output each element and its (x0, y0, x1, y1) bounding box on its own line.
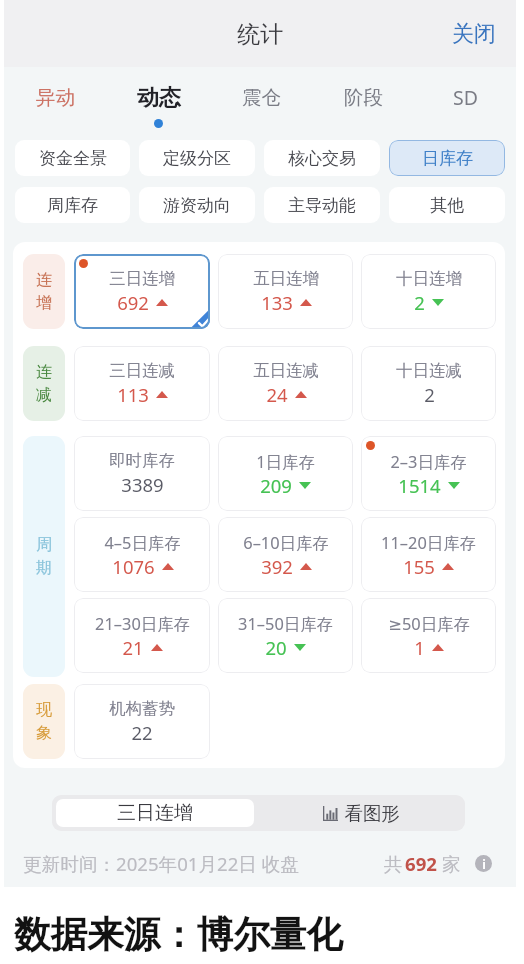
staticText: 209 (260, 473, 292, 498)
button[interactable]: 异动 (4, 67, 107, 140)
button[interactable]: 十日连增 (361, 254, 496, 329)
staticText: 五日连减 (253, 360, 319, 381)
staticText: 关闭 (452, 20, 496, 48)
staticText: 20 (265, 635, 287, 660)
staticText: 五日连增 (253, 268, 319, 289)
staticText: 共 (381, 851, 405, 876)
staticText: 统计 (237, 20, 283, 49)
button[interactable]: 核心交易 (264, 140, 380, 176)
staticText: 资金全景 (39, 148, 107, 169)
button[interactable]: 机构蓄势 (74, 684, 210, 759)
staticText: 震仓 (242, 85, 281, 110)
staticText: 6–10日库存 (243, 531, 329, 553)
staticText: SD (453, 84, 478, 111)
staticText: 2 (424, 382, 435, 407)
staticText: 连 减 (36, 362, 52, 405)
staticText: 133 (261, 290, 293, 315)
button[interactable]: 阶段 (312, 67, 414, 140)
staticText: 定级分区 (163, 148, 231, 169)
button[interactable]: 定级分区 (139, 140, 255, 176)
button[interactable]: 6–10日库存 (218, 517, 353, 592)
button[interactable]: 连 增 (23, 254, 65, 329)
button[interactable]: 现 象 (23, 684, 65, 759)
staticText: 现 象 (36, 700, 52, 743)
staticText: 动态 (137, 84, 181, 112)
staticText: 核心交易 (288, 148, 356, 169)
button[interactable]: 关闭 (452, 20, 496, 48)
button[interactable]: 4–5日库存 (74, 517, 210, 592)
staticText: 155 (403, 554, 435, 579)
staticText: 3389 (121, 472, 164, 497)
button[interactable]: 主导动能 (264, 187, 380, 223)
staticText: 692 (405, 851, 437, 876)
staticText: 4–5日库存 (104, 531, 181, 553)
staticText: 看图形 (344, 802, 400, 825)
button[interactable]: 2–3日库存 (361, 436, 496, 511)
staticText: 机构蓄势 (109, 698, 175, 719)
staticText: 数据来源：博尔量化 (14, 912, 343, 958)
button[interactable]: 周 期 (23, 436, 65, 677)
button[interactable]: 即时库存 (74, 436, 210, 511)
staticText: 1 (414, 635, 425, 660)
button[interactable]: 十日连减 (361, 346, 496, 421)
button[interactable]: 游资动向 (139, 187, 255, 223)
staticText: 三日连增 (109, 268, 175, 289)
staticText: 1076 (112, 554, 155, 579)
staticText: 家 (437, 851, 461, 876)
staticText: 其他 (430, 195, 464, 216)
staticText: 692 (117, 290, 149, 315)
button[interactable]: 日库存 (389, 140, 505, 176)
staticText: 连 增 (36, 270, 52, 313)
button[interactable]: 动态 (107, 67, 210, 140)
button[interactable]: 1日库存 (218, 436, 353, 511)
staticText: 1日库存 (256, 450, 315, 472)
staticText: 22 (131, 720, 153, 745)
button[interactable]: 11–20日库存 (361, 517, 496, 592)
button[interactable]: 看图形 (258, 795, 465, 831)
staticText: 周库存 (47, 195, 98, 216)
staticText: 11–20日库存 (381, 531, 476, 553)
staticText: 21 (122, 635, 144, 660)
staticText: 三日连增 (117, 801, 193, 825)
button[interactable]: ≥50日库存 (361, 598, 496, 673)
button[interactable]: 三日连减 (74, 346, 210, 421)
button[interactable]: 其他 (389, 187, 505, 223)
button[interactable]: 五日连增 (218, 254, 353, 329)
button[interactable]: 三日连增 (56, 799, 254, 827)
staticText: ≥50日库存 (388, 612, 470, 634)
staticText: 更新时间：2025年01月22日 收盘 (23, 851, 299, 876)
button[interactable]: SD (414, 67, 516, 140)
staticText: 日库存 (422, 148, 473, 169)
button[interactable]: Info (475, 855, 492, 872)
staticText: 392 (261, 554, 293, 579)
staticText: 游资动向 (163, 195, 231, 216)
staticText: 即时库存 (109, 450, 175, 471)
staticText: 主导动能 (288, 195, 356, 216)
staticText: 1514 (398, 473, 441, 498)
staticText: 异动 (36, 85, 75, 110)
staticText: 24 (266, 382, 288, 407)
button[interactable]: 21–30日库存 (74, 598, 210, 673)
button[interactable]: 资金全景 (15, 140, 130, 176)
staticText: 十日连增 (396, 268, 462, 289)
staticText: 31–50日库存 (238, 612, 333, 634)
button[interactable]: 三日连增 (74, 254, 210, 329)
button[interactable]: 连 减 (23, 346, 65, 421)
staticText: 21–30日库存 (95, 612, 190, 634)
staticText: 2–3日库存 (390, 450, 467, 472)
staticText: i (482, 856, 486, 872)
staticText: 2 (414, 290, 425, 315)
button[interactable]: 震仓 (210, 67, 312, 140)
staticText: 十日连减 (396, 360, 462, 381)
button[interactable]: 周库存 (15, 187, 130, 223)
button[interactable]: 31–50日库存 (218, 598, 353, 673)
staticText: 阶段 (344, 85, 383, 110)
button[interactable]: 五日连减 (218, 346, 353, 421)
staticText: 113 (117, 382, 149, 407)
staticText: 周 期 (36, 535, 52, 578)
staticText: 三日连减 (109, 360, 175, 381)
